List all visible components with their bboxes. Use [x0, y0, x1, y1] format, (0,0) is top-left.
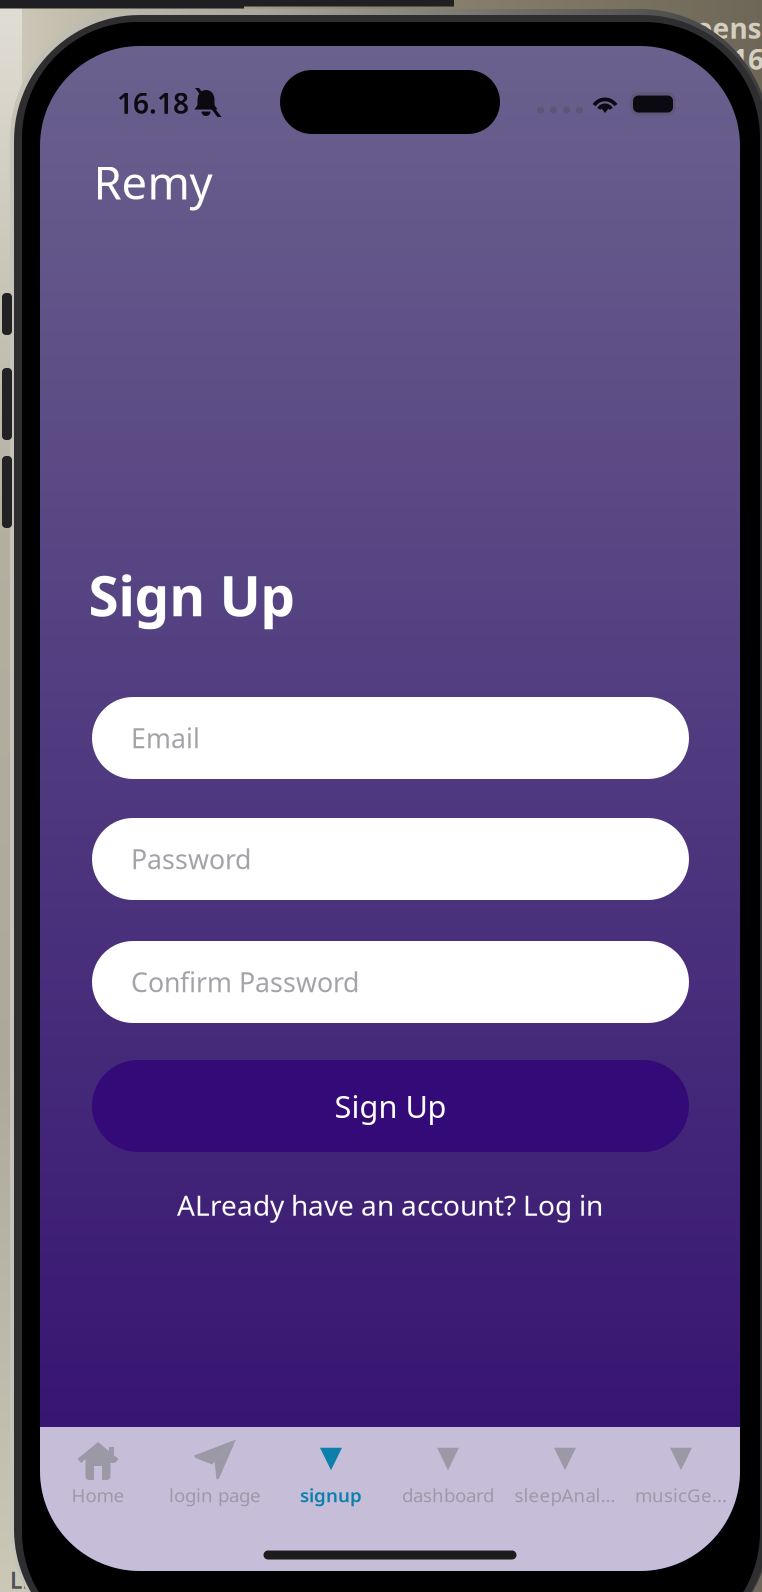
button[interactable]: Password	[92, 818, 689, 900]
button[interactable]: signup	[273, 1427, 389, 1519]
staticText: login page	[169, 1483, 261, 1507]
staticText: Confirm Password	[131, 964, 359, 1000]
staticText: sleepAnal...	[514, 1483, 615, 1507]
staticText: LF	[10, 1565, 34, 1592]
button[interactable]: Confirm Password	[92, 941, 689, 1023]
staticText: Sign Up	[88, 559, 295, 631]
staticText: Password	[131, 841, 251, 877]
staticText: Email	[131, 720, 200, 756]
staticText: dashboard	[402, 1483, 494, 1507]
button[interactable]: login page	[157, 1427, 273, 1519]
button[interactable]: Home	[40, 1427, 156, 1519]
staticText: signup	[300, 1483, 362, 1507]
button[interactable]: sleepAnal...	[507, 1427, 623, 1519]
staticText: Home	[71, 1483, 124, 1507]
staticText: Sign Up	[334, 1086, 446, 1126]
staticText: Remy	[93, 152, 212, 212]
button[interactable]: Sign Up	[92, 1060, 689, 1152]
button[interactable]: Email	[92, 697, 689, 779]
staticText: 16.18	[117, 84, 189, 122]
button[interactable]: dashboard	[390, 1427, 506, 1519]
staticText: musicGe...	[635, 1483, 727, 1507]
staticText: ALready have an account? Log in	[177, 1186, 603, 1224]
button[interactable]: musicGe...	[623, 1427, 739, 1519]
staticText: Screensh	[654, 9, 762, 47]
button[interactable]: ALready have an account? Log in	[60, 1177, 720, 1233]
staticText: 16	[732, 40, 762, 78]
